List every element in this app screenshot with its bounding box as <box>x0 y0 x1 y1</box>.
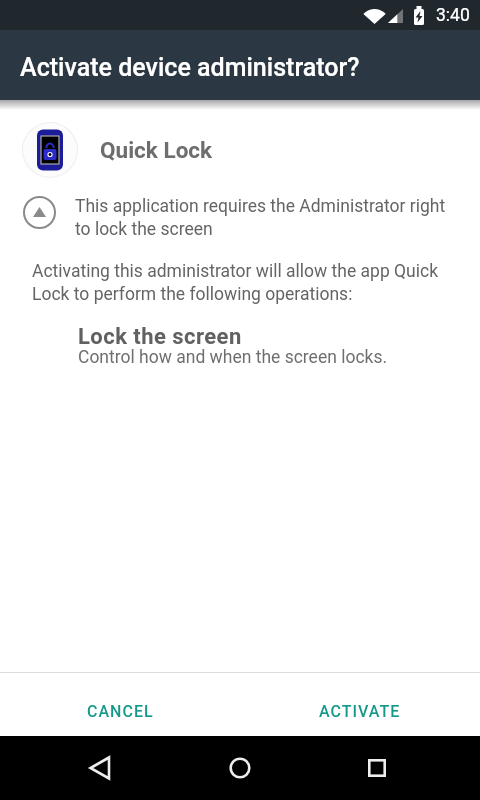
staticText: Lock the screen <box>78 324 242 350</box>
staticText: CANCEL <box>87 702 154 721</box>
staticText: ACTIVATE <box>319 702 401 721</box>
staticText: Activate device administrator? <box>20 53 360 82</box>
staticText: Activating this administrator will allow… <box>32 261 439 304</box>
button[interactable] <box>208 736 272 800</box>
button[interactable]: CANCEL <box>0 673 240 736</box>
button[interactable]: ACTIVATE <box>240 673 480 736</box>
staticText: Control how and when the screen locks. <box>78 347 388 368</box>
button[interactable] <box>345 736 409 800</box>
staticText: This application requires the Administra… <box>75 196 446 239</box>
button[interactable] <box>68 736 132 800</box>
staticText: 3:40 <box>436 5 470 26</box>
staticText: Quick Lock <box>100 137 213 163</box>
